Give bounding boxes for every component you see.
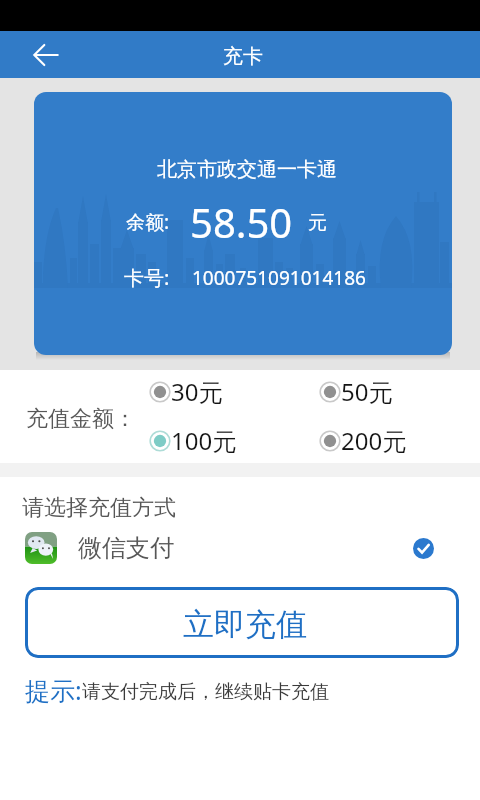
staticText: 200元 bbox=[341, 424, 407, 457]
staticText: 充卡 bbox=[223, 44, 263, 69]
button[interactable]: 100元 bbox=[149, 424, 237, 457]
button[interactable]: 200元 bbox=[319, 424, 407, 457]
staticText: 立即充值 bbox=[183, 605, 307, 644]
staticText: 请支付完成后，继续贴卡充值 bbox=[82, 680, 329, 704]
staticText: 充值金额： bbox=[26, 405, 136, 433]
button[interactable]: 微信支付 bbox=[0, 527, 480, 569]
staticText: 100元 bbox=[171, 424, 237, 457]
staticText: 58.50 bbox=[190, 195, 293, 249]
staticText: 1000751091014186 bbox=[192, 265, 366, 291]
staticText: 卡号: bbox=[124, 264, 170, 291]
staticText: 30元 bbox=[171, 375, 223, 408]
button[interactable]: 立即充值 bbox=[25, 587, 459, 658]
staticText: 提示: bbox=[25, 673, 82, 707]
staticText: 元 bbox=[308, 211, 327, 235]
button[interactable]: Back bbox=[22, 31, 69, 78]
button[interactable]: 30元 bbox=[149, 375, 223, 408]
button[interactable]: WeChat Pay selected bbox=[413, 538, 434, 559]
staticText: 50元 bbox=[341, 375, 393, 408]
staticText: 北京市政交通一卡通 bbox=[38, 157, 452, 182]
staticText: 余额: bbox=[126, 209, 170, 235]
staticText: 请选择充值方式 bbox=[22, 494, 176, 522]
staticText: 微信支付 bbox=[78, 533, 174, 563]
button[interactable]: 50元 bbox=[319, 375, 393, 408]
